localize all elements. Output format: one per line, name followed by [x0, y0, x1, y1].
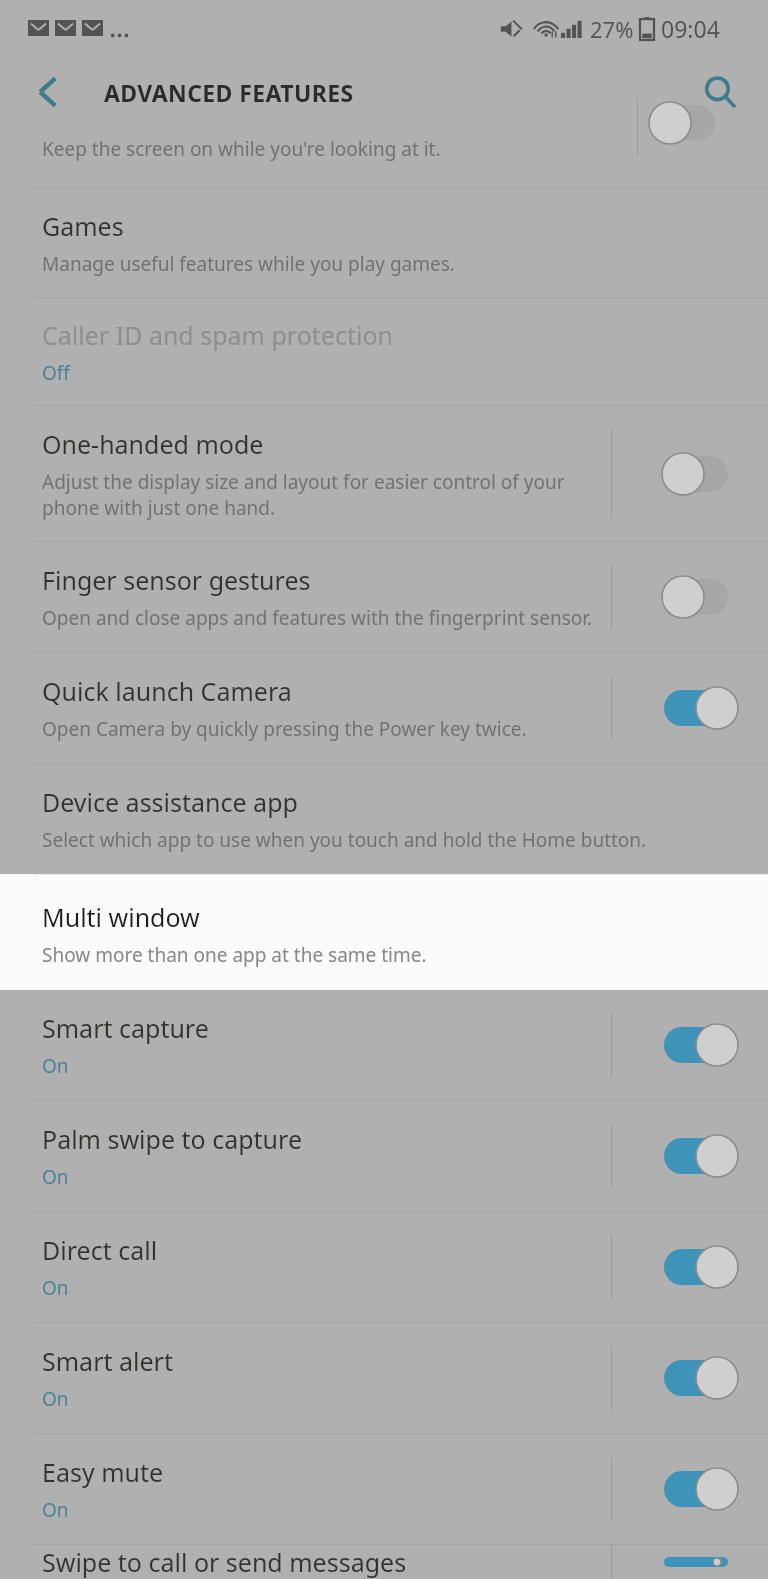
button[interactable]: Multi window — [0, 874, 768, 990]
staticText: ADVANCED FEATURES — [104, 77, 354, 108]
staticText: Device assistance app — [42, 785, 298, 819]
button[interactable]: Quick launch Camera — [0, 653, 768, 763]
button[interactable]: One-handed mode toggle — [653, 439, 747, 509]
staticText: One-handed mode — [42, 427, 264, 461]
button[interactable]: Games — [0, 189, 768, 297]
button[interactable]: Finger sensor gestures toggle — [653, 562, 747, 632]
staticText: Off — [42, 360, 70, 386]
button[interactable]: Smart capture toggle — [653, 1010, 747, 1080]
button[interactable]: Palm swipe to capture toggle — [653, 1121, 747, 1191]
button[interactable]: Swipe to call or send messages — [0, 1545, 768, 1579]
staticText: Open and close apps and features with th… — [42, 605, 593, 631]
staticText: On — [42, 1275, 69, 1301]
staticText: Easy mute — [42, 1455, 164, 1489]
staticText: On — [42, 1386, 69, 1412]
staticText: Adjust the display size and layout for e… — [42, 469, 565, 521]
button[interactable]: Back — [0, 56, 96, 128]
staticText: Swipe to call or send messages — [42, 1545, 407, 1579]
button[interactable]: Search — [672, 56, 768, 128]
staticText: On — [42, 1164, 69, 1190]
staticText: Multi window — [42, 900, 200, 934]
staticText: Caller ID and spam protection — [42, 318, 393, 352]
staticText: Finger sensor gestures — [42, 563, 311, 597]
staticText: Games — [42, 209, 124, 243]
staticText: On — [42, 1497, 69, 1523]
staticText: On — [42, 1053, 69, 1079]
staticText: Open Camera by quickly pressing the Powe… — [42, 716, 527, 742]
button[interactable]: Finger sensor gestures — [0, 542, 768, 652]
button[interactable]: Smart alert toggle — [653, 1343, 747, 1413]
staticText: 09:04 — [661, 13, 720, 44]
staticText: Manage useful features while you play ga… — [42, 251, 455, 277]
button[interactable]: Easy mute — [0, 1434, 768, 1544]
button[interactable]: One-handed mode — [0, 406, 768, 541]
button[interactable]: Palm swipe to capture — [0, 1101, 768, 1211]
staticText: Show more than one app at the same time. — [42, 942, 427, 968]
staticText: Palm swipe to capture — [42, 1122, 302, 1156]
button[interactable]: Swipe to call or send messages toggle — [653, 1545, 747, 1579]
button[interactable]: Easy mute toggle — [653, 1454, 747, 1524]
button[interactable]: Smart capture — [0, 990, 768, 1100]
staticText: 27% — [590, 14, 634, 44]
staticText: Direct call — [42, 1233, 158, 1267]
button[interactable]: Quick launch Camera toggle — [653, 673, 747, 743]
staticText: Keep the screen on while you're looking … — [42, 136, 441, 162]
staticText: Select which app to use when you touch a… — [42, 827, 647, 853]
staticText: Smart alert — [42, 1344, 173, 1378]
button[interactable]: Keep the screen on while you're looking … — [0, 128, 768, 188]
button[interactable]: Smart alert — [0, 1323, 768, 1433]
staticText: Quick launch Camera — [42, 674, 292, 708]
staticText: Smart capture — [42, 1011, 209, 1045]
button[interactable]: Caller ID and spam protection — [0, 298, 768, 405]
button[interactable]: Direct call — [0, 1212, 768, 1322]
button[interactable]: Direct call toggle — [653, 1232, 747, 1302]
button[interactable]: Device assistance app — [0, 764, 768, 874]
